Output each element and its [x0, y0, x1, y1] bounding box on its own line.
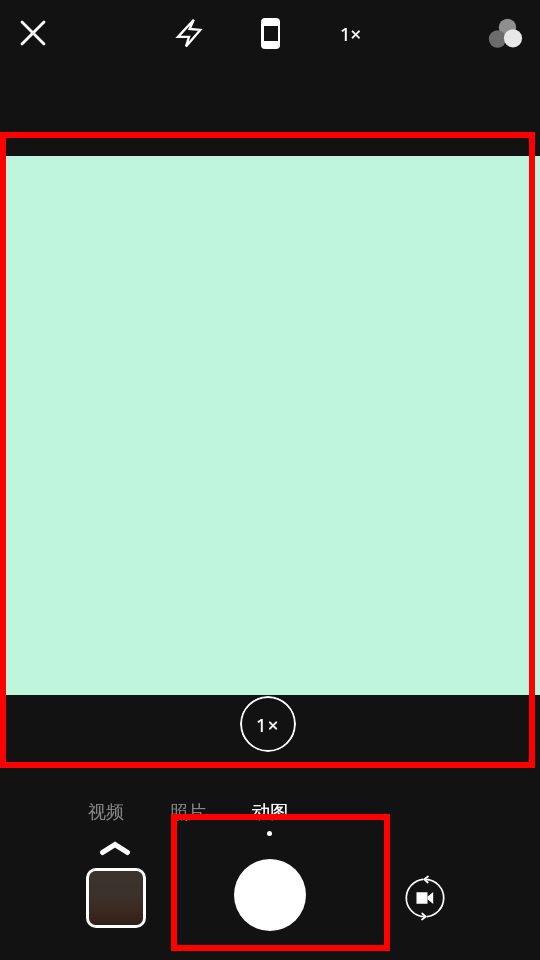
staticText: 1×: [340, 21, 362, 46]
staticText: 动图: [252, 801, 288, 824]
button[interactable]: 动图: [240, 798, 300, 826]
staticText: 1×: [256, 712, 280, 737]
button[interactable]: 1×: [329, 11, 373, 55]
button[interactable]: Gallery: [89, 871, 143, 925]
button[interactable]: 照片: [158, 798, 218, 826]
button[interactable]: Switch camera: [403, 876, 447, 920]
button[interactable]: Shutter: [234, 859, 306, 931]
button[interactable]: 视频: [76, 798, 136, 826]
button[interactable]: Aspect ratio: [248, 11, 292, 55]
button[interactable]: Close: [11, 11, 55, 55]
button[interactable]: 1×: [240, 696, 296, 752]
staticText: 视频: [88, 801, 124, 824]
button[interactable]: Flash: [167, 11, 211, 55]
staticText: 照片: [170, 801, 206, 824]
button[interactable]: Filters: [485, 11, 529, 55]
